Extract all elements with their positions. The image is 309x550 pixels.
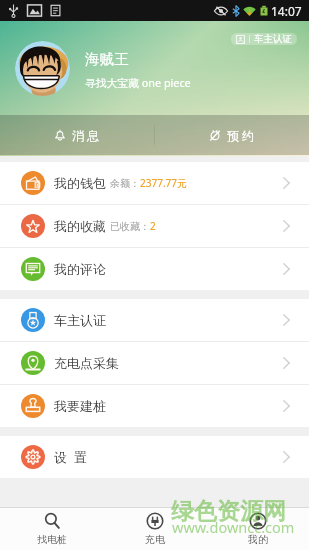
- staticText: 预 约: [227, 127, 255, 143]
- button[interactable]: 我的收藏: [0, 205, 309, 247]
- staticText: 2: [150, 219, 156, 233]
- button[interactable]: 我的评论: [0, 248, 309, 290]
- staticText: 寻找大宝藏 one piece: [85, 75, 191, 90]
- staticText: 我的: [248, 533, 268, 546]
- button[interactable]: 预 约: [155, 115, 309, 155]
- button[interactable]: 车主认证: [231, 33, 297, 45]
- button[interactable]: 车主认证: [0, 299, 309, 341]
- staticText: 车主认证: [254, 33, 292, 45]
- button[interactable]: 充电点采集: [0, 342, 309, 384]
- button[interactable]: 充电: [103, 507, 206, 550]
- staticText: 绿色资源网: [171, 497, 286, 526]
- button[interactable]: 找电桩: [0, 507, 103, 550]
- button[interactable]: 我的: [206, 507, 309, 550]
- staticText: 海贼王: [85, 50, 129, 68]
- staticText: 设 置: [54, 448, 87, 466]
- button[interactable]: 我要建桩: [0, 385, 309, 427]
- staticText: 我要建桩: [54, 398, 106, 414]
- staticText: 充电: [145, 533, 165, 546]
- staticText: 我的评论: [54, 261, 106, 277]
- staticText: 余额：: [110, 177, 140, 190]
- staticText: 已收藏：: [110, 220, 150, 233]
- button[interactable]: 消 息: [0, 115, 154, 155]
- staticText: 我的钱包: [54, 175, 106, 191]
- staticText: 充电点采集: [54, 355, 119, 371]
- staticText: 2377.77元: [140, 176, 187, 190]
- button[interactable]: 我的钱包: [0, 162, 309, 204]
- staticText: 我的收藏: [54, 218, 106, 234]
- staticText: 车主认证: [54, 312, 106, 328]
- staticText: 找电桩: [37, 533, 67, 546]
- staticText: www.downcc.com: [172, 517, 295, 537]
- staticText: 消 息: [72, 127, 100, 143]
- staticText: 14:07: [271, 3, 302, 19]
- button[interactable]: 设 置: [0, 436, 309, 478]
